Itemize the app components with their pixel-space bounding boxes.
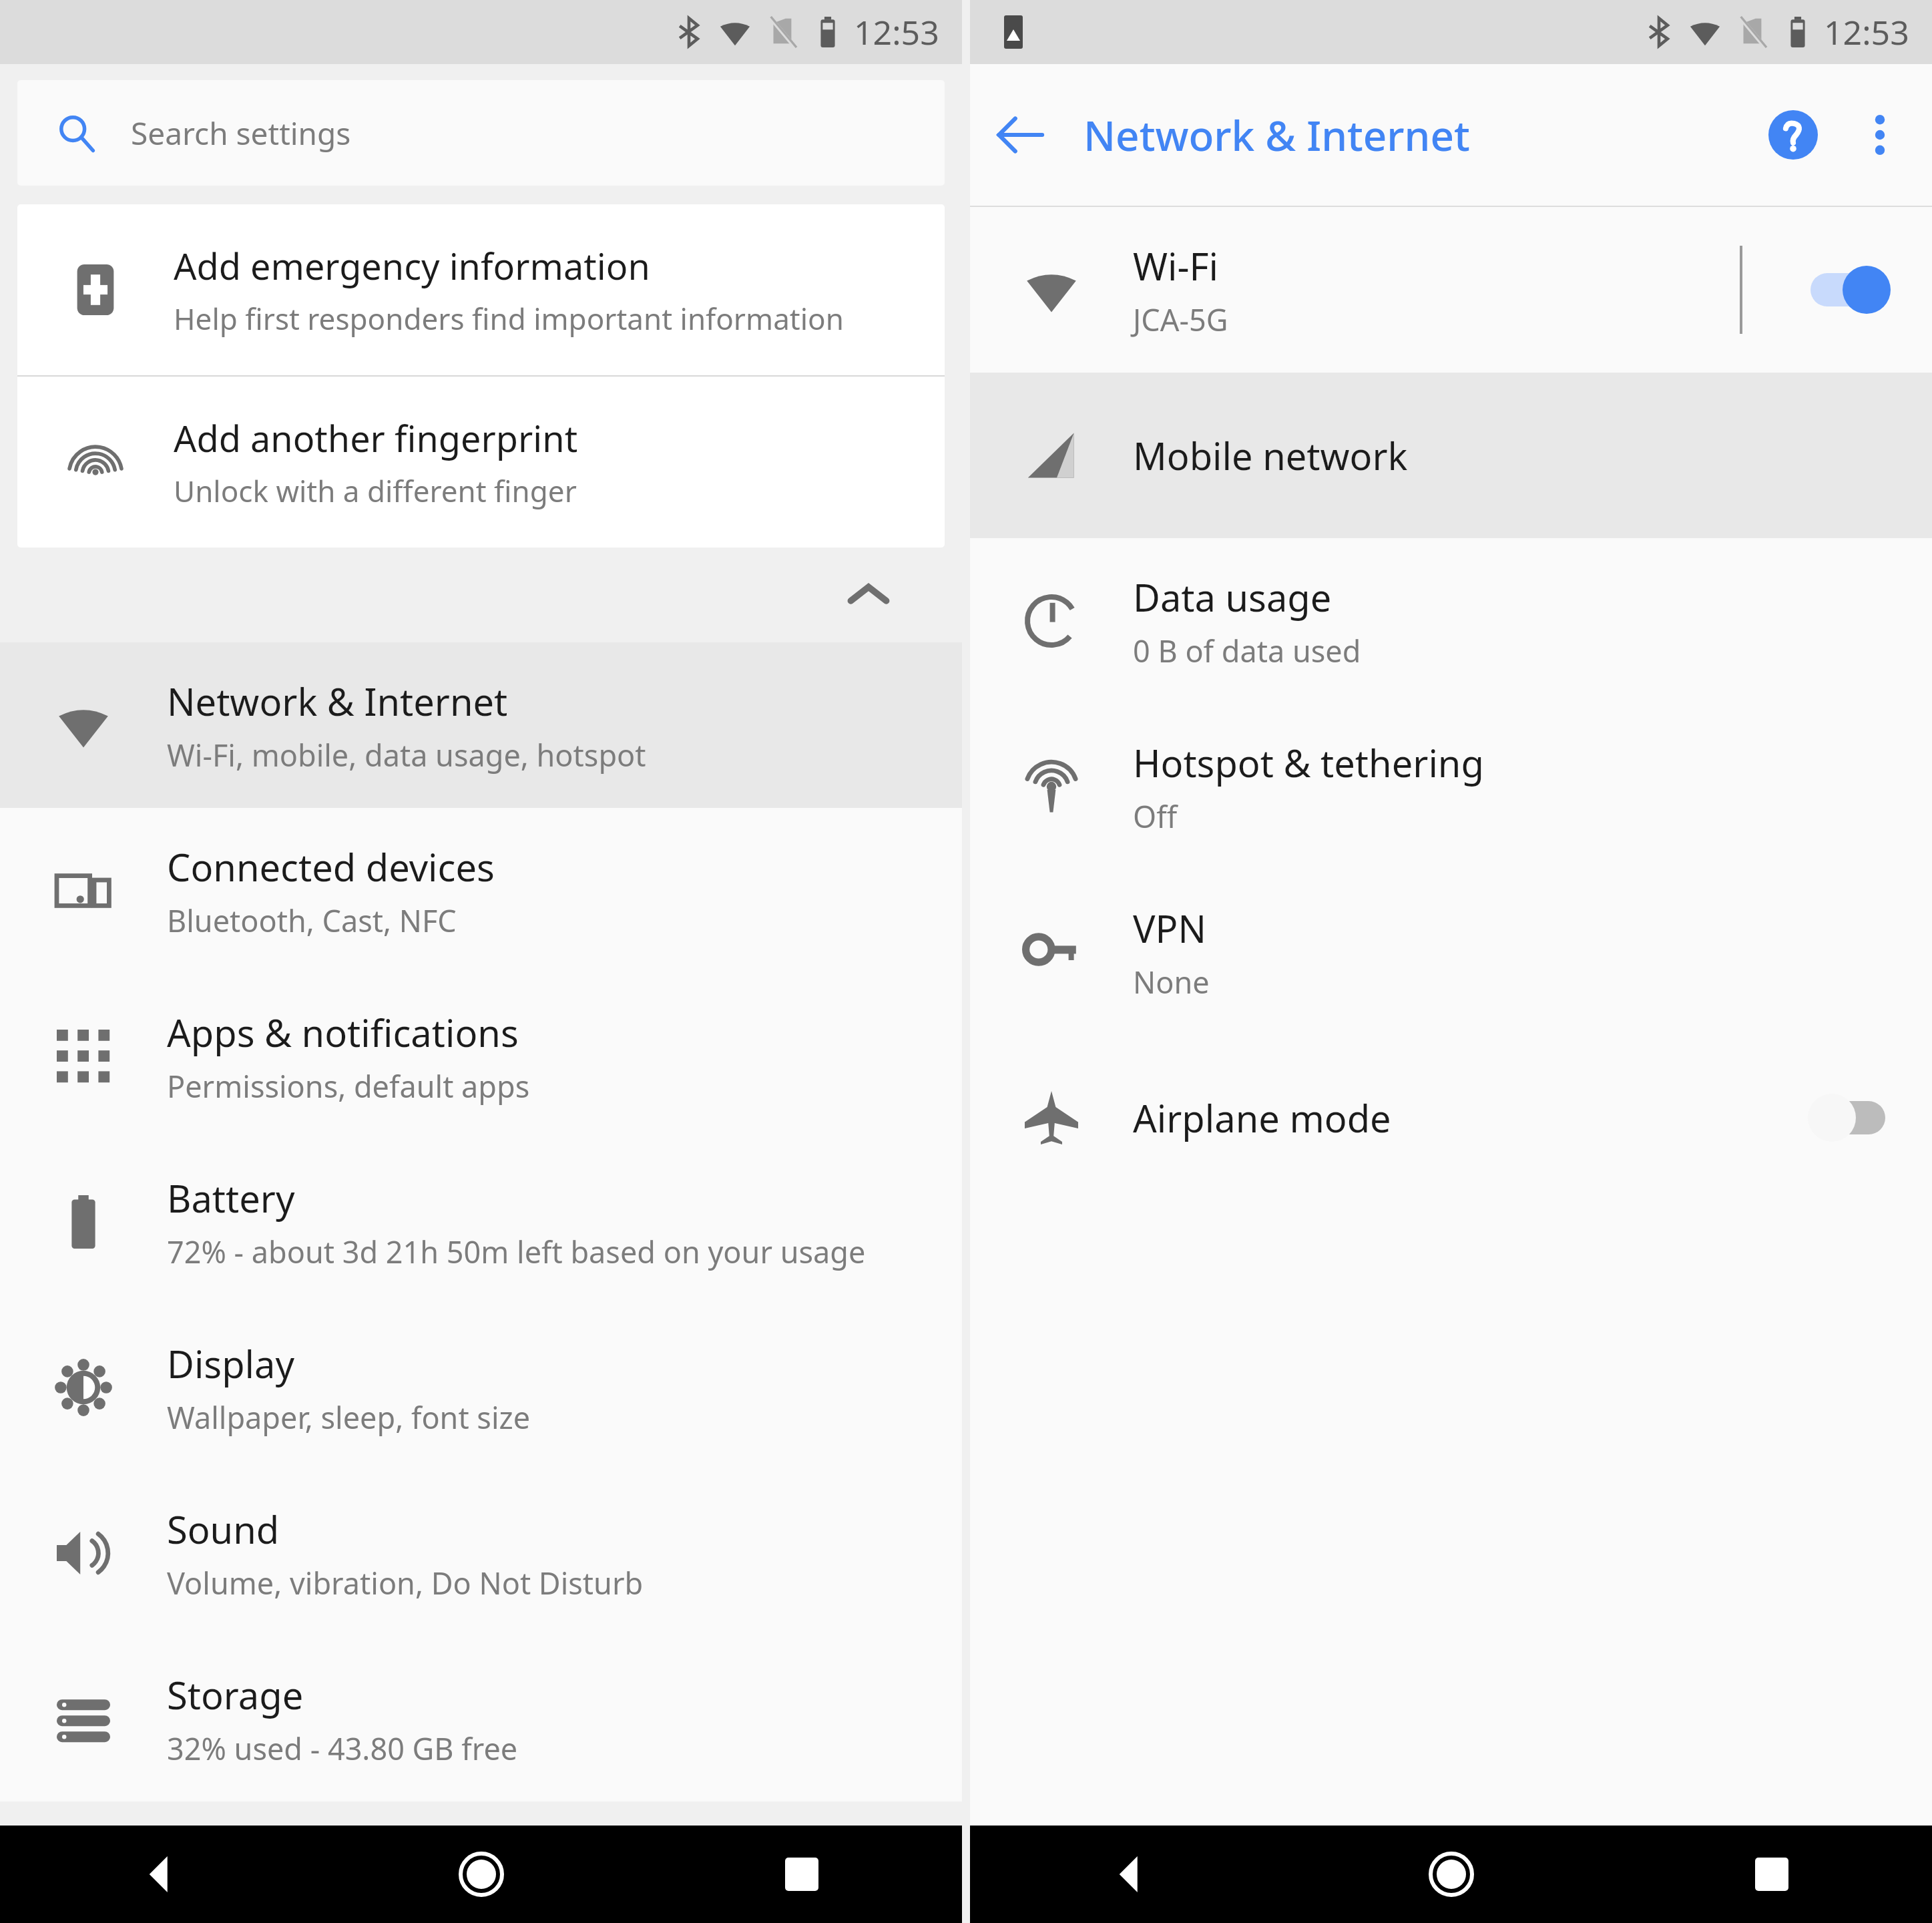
button[interactable]: Airplane mode <box>970 1035 1932 1201</box>
button[interactable]: Back <box>970 85 1070 185</box>
button[interactable]: Storage <box>0 1636 962 1801</box>
staticText: Storage <box>167 1669 304 1720</box>
button[interactable]: Search settings <box>17 80 945 186</box>
staticText: Network & Internet <box>167 676 508 726</box>
staticText: Wallpaper, sleep, font size <box>167 1397 531 1438</box>
button[interactable]: Add another fingerprint <box>17 377 945 548</box>
button[interactable]: Hotspot & tethering <box>970 704 1932 869</box>
staticText: Data usage <box>1133 572 1332 622</box>
button[interactable]: Off <box>1808 1092 1891 1144</box>
button[interactable]: Help <box>1746 88 1840 182</box>
button[interactable]: Mobile network <box>970 373 1932 538</box>
staticText: JCA-5G <box>1133 299 1228 340</box>
staticText: Wi-Fi <box>1133 240 1219 291</box>
staticText: 32% used - 43.80 GB free <box>167 1728 518 1769</box>
button[interactable]: VPN <box>970 869 1932 1035</box>
button[interactable]: Recent apps <box>642 1826 962 1923</box>
staticText: Bluetooth, Cast, NFC <box>167 900 457 941</box>
button[interactable]: Connected devices <box>0 808 962 974</box>
staticText: Permissions, default apps <box>167 1066 530 1106</box>
button[interactable]: Recent apps <box>1612 1826 1932 1923</box>
button[interactable]: Battery <box>0 1139 962 1305</box>
staticText: 12:53 <box>854 9 939 55</box>
button[interactable]: On <box>1808 264 1891 316</box>
button[interactable]: Home <box>321 1826 642 1923</box>
staticText: Unlock with a different finger <box>174 471 577 511</box>
button[interactable]: Back <box>970 1826 1291 1923</box>
staticText: Add emergency information <box>174 241 650 290</box>
staticText: Wi-Fi, mobile, data usage, hotspot <box>167 734 646 775</box>
staticText: Off <box>1133 796 1178 837</box>
staticText: Apps & notifications <box>167 1007 519 1058</box>
staticText: 0 B of data used <box>1133 630 1361 671</box>
button[interactable]: Wi-Fi <box>970 207 1932 373</box>
staticText: Network & Internet <box>1083 107 1470 163</box>
button[interactable]: Sound <box>0 1470 962 1636</box>
button[interactable]: Back <box>0 1826 321 1923</box>
button[interactable]: Network & Internet <box>0 642 962 808</box>
staticText: Display <box>167 1338 295 1389</box>
staticText: None <box>1133 961 1210 1002</box>
staticText: 12:53 <box>1824 9 1909 55</box>
staticText: VPN <box>1133 903 1207 953</box>
button[interactable]: Collapse suggestions <box>0 548 962 642</box>
button[interactable]: Data usage <box>970 538 1932 704</box>
button[interactable]: More options <box>1840 95 1920 175</box>
button[interactable]: Home <box>1291 1826 1612 1923</box>
button[interactable]: Add emergency information <box>17 204 945 375</box>
staticText: Connected devices <box>167 841 495 892</box>
staticText: Airplane mode <box>1133 1092 1391 1143</box>
button[interactable]: Display <box>0 1305 962 1470</box>
button[interactable]: Apps & notifications <box>0 974 962 1139</box>
staticText: Volume, vibration, Do Not Disturb <box>167 1562 644 1603</box>
staticText: Battery <box>167 1172 295 1223</box>
staticText: Search settings <box>131 112 351 154</box>
staticText: Hotspot & tethering <box>1133 737 1484 788</box>
staticText: Sound <box>167 1504 280 1554</box>
staticText: Mobile network <box>1133 430 1408 481</box>
staticText: 72% - about 3d 21h 50m left based on you… <box>167 1231 866 1272</box>
staticText: Add another fingerprint <box>174 413 578 463</box>
staticText: Help first responders find important inf… <box>174 298 844 339</box>
